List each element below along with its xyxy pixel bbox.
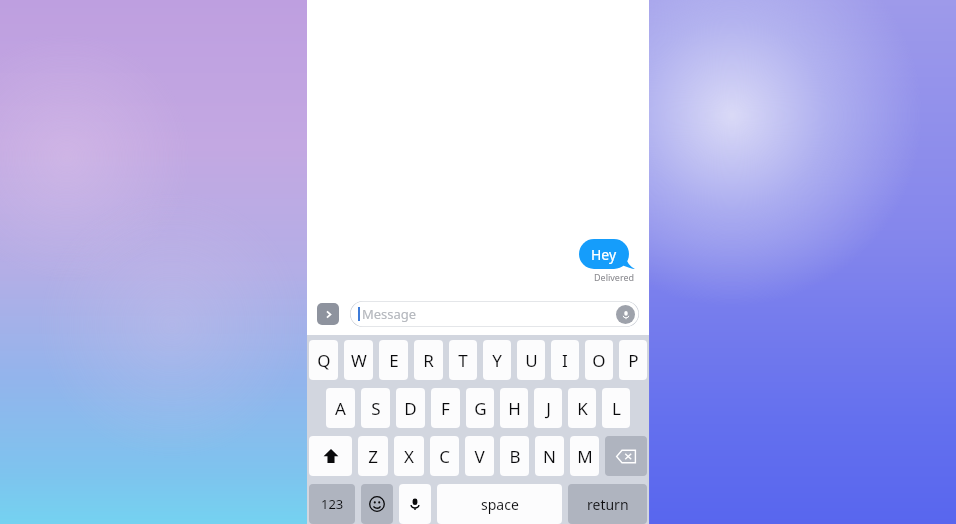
- staticText: F: [441, 397, 450, 420]
- staticText: X: [404, 445, 414, 468]
- staticText: return: [587, 495, 629, 514]
- button[interactable]: S: [361, 388, 390, 428]
- staticText: B: [509, 445, 521, 468]
- staticText: C: [439, 445, 450, 468]
- button[interactable]: 123: [309, 484, 355, 524]
- button[interactable]: Q: [309, 340, 338, 380]
- staticText: V: [474, 445, 485, 468]
- staticText: G: [474, 397, 487, 420]
- button[interactable]: C: [430, 436, 459, 476]
- button[interactable]: I: [551, 340, 579, 380]
- button[interactable]: M: [570, 436, 599, 476]
- button[interactable]: R: [414, 340, 443, 380]
- button[interactable]: P: [619, 340, 647, 380]
- button[interactable]: space: [437, 484, 562, 524]
- button[interactable]: return: [568, 484, 647, 524]
- button[interactable]: H: [500, 388, 528, 428]
- button[interactable]: E: [379, 340, 408, 380]
- staticText: P: [628, 349, 639, 372]
- staticText: T: [458, 349, 468, 372]
- staticText: J: [546, 397, 551, 420]
- staticText: Q: [317, 349, 331, 372]
- button[interactable]: Dictate: [616, 305, 635, 324]
- staticText: Hey: [591, 245, 617, 264]
- button[interactable]: B: [500, 436, 529, 476]
- staticText: N: [543, 445, 556, 468]
- button[interactable]: Message: [350, 301, 639, 327]
- button[interactable]: Z: [358, 436, 388, 476]
- button[interactable]: X: [394, 436, 424, 476]
- staticText: E: [389, 349, 399, 372]
- button[interactable]: Dictation: [399, 484, 431, 524]
- staticText: D: [404, 397, 417, 420]
- button[interactable]: G: [466, 388, 494, 428]
- button[interactable]: O: [585, 340, 613, 380]
- button[interactable]: J: [534, 388, 562, 428]
- staticText: L: [612, 397, 621, 420]
- button[interactable]: Shift: [309, 436, 352, 476]
- staticText: Message: [362, 305, 417, 323]
- staticText: Delivered: [594, 271, 635, 283]
- staticText: Y: [492, 349, 502, 372]
- button[interactable]: V: [465, 436, 494, 476]
- staticText: space: [481, 495, 519, 514]
- staticText: O: [592, 349, 606, 372]
- button[interactable]: L: [602, 388, 630, 428]
- staticText: Z: [368, 445, 378, 468]
- staticText: 123: [321, 495, 344, 513]
- button[interactable]: D: [396, 388, 425, 428]
- button[interactable]: A: [326, 388, 355, 428]
- staticText: W: [351, 349, 367, 372]
- staticText: I: [562, 349, 568, 372]
- staticText: U: [525, 349, 538, 372]
- button[interactable]: W: [344, 340, 373, 380]
- button[interactable]: Show apps: [317, 303, 339, 325]
- button[interactable]: K: [568, 388, 596, 428]
- staticText: H: [508, 397, 521, 420]
- button[interactable]: U: [517, 340, 545, 380]
- button[interactable]: Emoji: [361, 484, 393, 524]
- button[interactable]: Y: [483, 340, 511, 380]
- button[interactable]: N: [535, 436, 564, 476]
- button[interactable]: T: [449, 340, 477, 380]
- staticText: K: [577, 397, 588, 420]
- staticText: S: [371, 397, 381, 420]
- button[interactable]: F: [431, 388, 460, 428]
- staticText: M: [577, 445, 593, 468]
- staticText: R: [423, 349, 434, 372]
- staticText: A: [335, 397, 346, 420]
- button[interactable]: Backspace: [605, 436, 647, 476]
